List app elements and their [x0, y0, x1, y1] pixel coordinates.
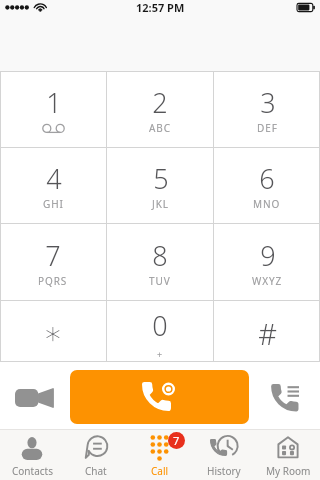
staticText: DEF — [257, 121, 278, 135]
staticText: WXYZ — [252, 274, 283, 288]
button[interactable]: 7 — [128, 429, 192, 480]
staticText: Chat — [85, 464, 107, 478]
staticText: 4 — [46, 160, 62, 197]
button[interactable]: 1 — [0, 71, 106, 147]
button[interactable]: Contacts — [0, 429, 64, 480]
button[interactable]: 9 — [214, 224, 320, 300]
staticText: 7 — [45, 237, 61, 274]
staticText: Call — [151, 464, 169, 478]
staticText: 8 — [152, 237, 168, 274]
staticText: ∗ — [43, 315, 63, 351]
button[interactable]: History — [192, 429, 256, 480]
staticText: # — [258, 314, 277, 353]
button[interactable]: 6 — [214, 148, 320, 223]
button[interactable]: Video call — [4, 380, 64, 416]
button[interactable]: Call — [70, 370, 249, 424]
staticText: + — [157, 348, 163, 360]
staticText: 3 — [260, 84, 276, 121]
staticText: 6 — [259, 160, 275, 197]
staticText: 5 — [153, 160, 169, 197]
staticText: 7 — [173, 433, 180, 448]
staticText: My Room — [266, 464, 311, 478]
staticText: TUV — [149, 274, 171, 288]
staticText: GHI — [43, 197, 64, 211]
button[interactable]: 3 — [214, 71, 320, 147]
button[interactable]: 5 — [107, 148, 213, 223]
staticText: 9 — [260, 237, 276, 274]
button[interactable]: My Room — [256, 429, 320, 480]
button[interactable]: # — [214, 301, 320, 361]
staticText: Contacts — [12, 464, 53, 478]
button[interactable]: ∗ — [0, 301, 106, 361]
staticText: ABC — [149, 121, 171, 135]
button[interactable]: 2 — [107, 71, 213, 147]
staticText: 1 — [46, 84, 62, 121]
button[interactable]: 7 — [0, 224, 106, 300]
staticText: History — [207, 464, 241, 478]
button[interactable]: 0 — [107, 301, 213, 361]
staticText: MNO — [253, 197, 281, 211]
button[interactable]: Call log — [257, 380, 313, 416]
button[interactable]: 4 — [0, 148, 106, 223]
staticText: JKL — [152, 197, 169, 211]
staticText: PQRS — [38, 274, 68, 288]
button[interactable]: 8 — [107, 224, 213, 300]
staticText: 2 — [152, 84, 168, 121]
button[interactable]: Chat — [64, 429, 128, 480]
staticText: 12:57 PM — [136, 0, 185, 15]
staticText: 0 — [152, 307, 168, 344]
